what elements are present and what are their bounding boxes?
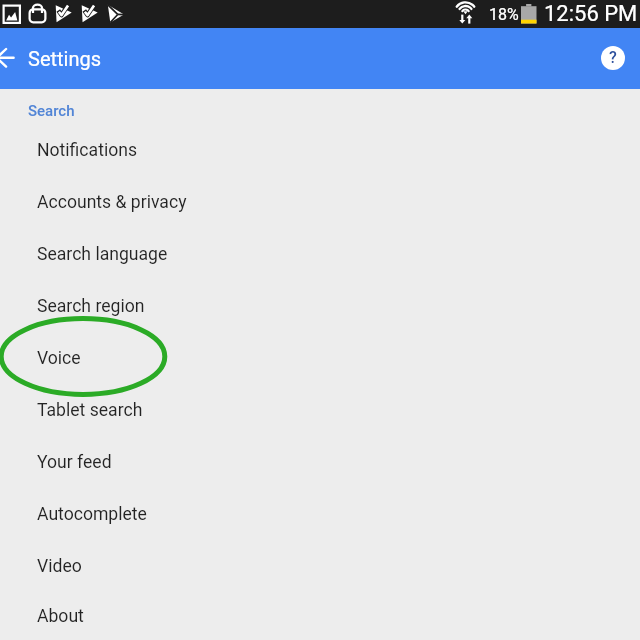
button[interactable]: Notifications <box>0 124 640 176</box>
button[interactable]: Tablet search <box>0 384 640 436</box>
button[interactable]: Voice <box>0 332 640 384</box>
staticText: Autocomplete <box>37 504 147 525</box>
button[interactable]: Help <box>593 38 633 78</box>
button[interactable]: Search language <box>0 228 640 280</box>
button[interactable]: Autocomplete <box>0 488 640 540</box>
staticText: Notifications <box>37 140 138 161</box>
button[interactable]: Search region <box>0 280 640 332</box>
staticText: Search region <box>37 296 145 317</box>
staticText: Settings <box>28 47 102 70</box>
staticText: Your feed <box>37 452 112 473</box>
button[interactable]: About <box>0 592 640 640</box>
staticText: Search <box>28 102 75 120</box>
staticText: 12:56 PM <box>544 1 638 27</box>
staticText: Accounts & privacy <box>37 192 187 213</box>
button[interactable]: Back <box>0 35 26 83</box>
staticText: Video <box>37 556 82 577</box>
button[interactable]: Video <box>0 540 640 592</box>
staticText: Tablet search <box>37 400 143 421</box>
button[interactable]: Your feed <box>0 436 640 488</box>
staticText: Voice <box>37 348 81 369</box>
staticText: Search language <box>37 244 168 265</box>
button[interactable]: Accounts & privacy <box>0 176 640 228</box>
staticText: ? <box>609 48 617 67</box>
staticText: 18% <box>489 5 519 24</box>
staticText: About <box>37 606 84 627</box>
